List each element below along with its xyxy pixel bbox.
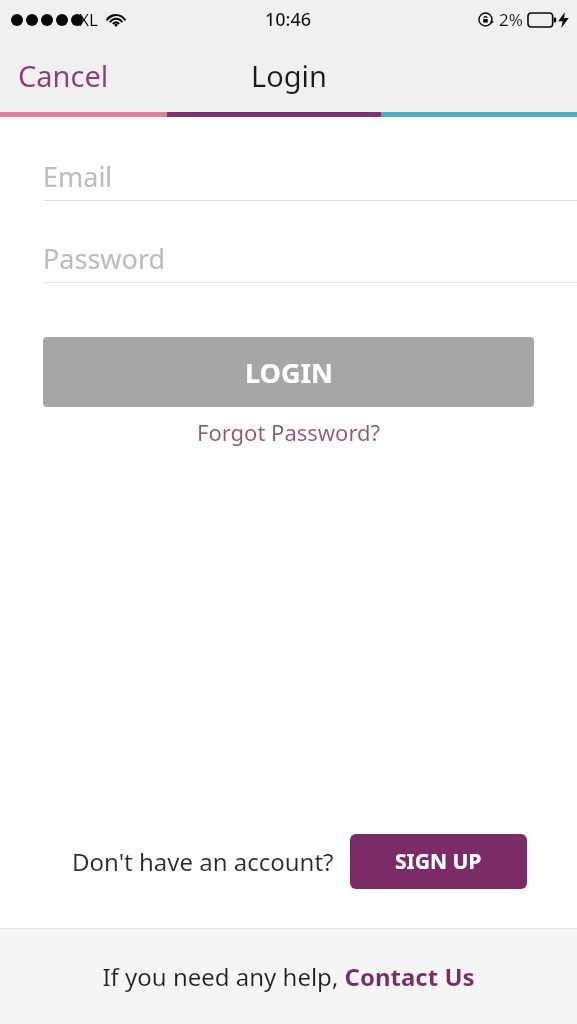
staticText: Forgot Password? — [197, 417, 381, 447]
staticText: Don't have an account? — [72, 845, 334, 878]
staticText: Login — [251, 56, 327, 95]
staticText: Password — [43, 240, 166, 277]
button[interactable]: LOGIN — [43, 337, 534, 407]
button[interactable]: Cancel — [0, 38, 127, 112]
button[interactable]: SIGN UP — [350, 834, 527, 889]
staticText: 10:46 — [265, 7, 312, 32]
staticText: Cancel — [18, 56, 109, 95]
button[interactable]: If you need any help, Contact Us — [0, 929, 577, 1024]
button[interactable]: Forgot Password? — [0, 417, 577, 447]
staticText: 2% — [499, 8, 523, 31]
staticText: LOGIN — [245, 354, 333, 391]
staticText: XL — [79, 8, 98, 31]
staticText: If you need any help, Contact Us — [102, 960, 475, 993]
button[interactable]: Password — [0, 234, 577, 283]
staticText: SIGN UP — [395, 847, 482, 876]
button[interactable]: Email — [0, 152, 577, 201]
staticText: Email — [43, 158, 113, 195]
